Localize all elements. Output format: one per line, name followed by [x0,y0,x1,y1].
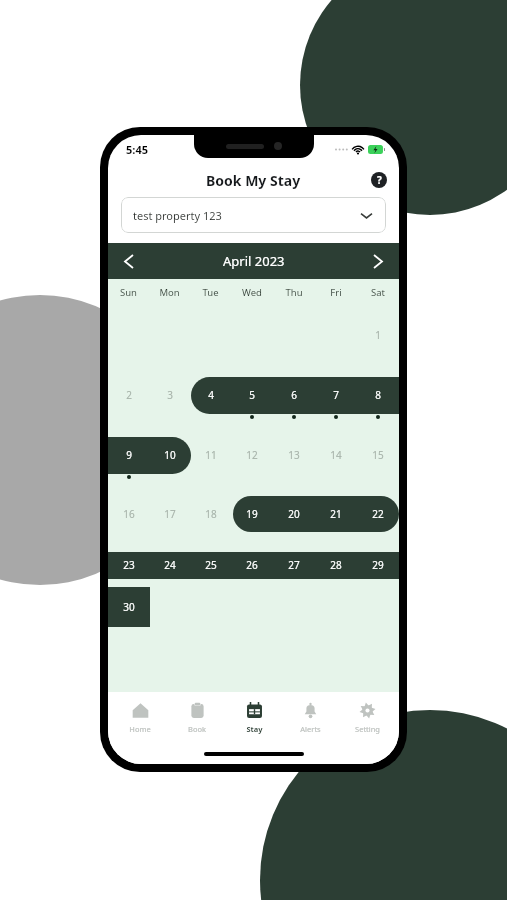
button[interactable]: 3 [149,365,190,425]
staticText: Thu [285,286,303,299]
staticText: 2 [126,388,132,402]
staticText: April 2023 [223,252,285,270]
staticText: Sat [371,286,385,299]
button[interactable]: 24 [149,543,190,587]
staticText: 1 [375,328,381,342]
staticText: 17 [164,507,176,521]
button[interactable]: 5 [231,365,273,425]
staticText: Alerts [300,724,321,734]
button[interactable]: 1 [357,305,399,365]
staticText: 20 [288,507,300,521]
button[interactable]: 12 [231,425,273,485]
button[interactable]: Setting [342,702,392,734]
button[interactable]: 27 [273,543,315,587]
staticText: 28 [330,558,342,572]
staticText: 27 [288,558,300,572]
staticText: Wed [242,286,262,299]
staticText: Fri [330,286,342,299]
staticText: 13 [288,448,300,462]
staticText: 12 [246,448,258,462]
staticText: ? [377,173,382,187]
staticText: 19 [246,507,258,521]
staticText: 4 [208,388,214,402]
staticText: 15 [372,448,384,462]
button[interactable]: Previous month [116,248,142,274]
button[interactable]: 18 [190,485,231,543]
button[interactable]: 14 [315,425,357,485]
button[interactable]: Alerts [285,702,335,734]
button[interactable]: Next month [365,248,391,274]
button[interactable]: 11 [190,425,231,485]
button[interactable]: 13 [273,425,315,485]
staticText: 8 [375,388,381,402]
staticText: 14 [330,448,342,462]
staticText: Home [129,724,151,734]
button[interactable]: 26 [231,543,273,587]
staticText: Mon [159,286,180,299]
button[interactable]: 4 [190,365,231,425]
button[interactable]: Book [172,702,222,734]
staticText: 9 [126,448,132,462]
button[interactable]: Help [371,172,387,188]
button[interactable]: 6 [273,365,315,425]
staticText: 18 [205,507,217,521]
staticText: Book [188,724,206,734]
button[interactable]: 28 [315,543,357,587]
staticText: Tue [202,286,219,299]
button[interactable]: 17 [149,485,190,543]
button[interactable]: 2 [108,365,149,425]
staticText: 29 [372,558,384,572]
staticText: Book My Stay [206,171,301,190]
button[interactable]: 23 [108,543,149,587]
staticText: 26 [246,558,258,572]
staticText: 5:45 [126,142,148,157]
button[interactable]: 21 [315,485,357,543]
button [149,587,190,627]
staticText: 6 [291,388,297,402]
staticText: 21 [330,507,342,521]
button[interactable]: 25 [190,543,231,587]
button[interactable]: Stay [229,702,279,734]
staticText: 30 [123,600,135,614]
staticText: 16 [123,507,135,521]
staticText: 7 [333,388,339,402]
button[interactable]: 22 [357,485,399,543]
staticText: 23 [123,558,135,572]
staticText: Sun [120,286,137,299]
button[interactable]: 30 [108,587,149,627]
staticText: 5 [249,388,255,402]
button[interactable]: 19 [231,485,273,543]
button[interactable]: 16 [108,485,149,543]
staticText: 24 [164,558,176,572]
button[interactable]: 29 [357,543,399,587]
staticText: Stay [246,724,263,734]
button[interactable]: 9 [108,425,149,485]
staticText: 10 [164,448,176,462]
button[interactable]: Home [115,702,165,734]
staticText: Setting [355,724,380,734]
staticText: test property 123 [133,208,222,223]
staticText: 22 [372,507,384,521]
button[interactable]: 20 [273,485,315,543]
staticText: 3 [167,388,173,402]
staticText: 11 [205,448,217,462]
staticText: 25 [205,558,217,572]
button[interactable]: 8 [357,365,399,425]
button[interactable]: 10 [149,425,190,485]
button[interactable]: 7 [315,365,357,425]
button[interactable]: test property 123 [121,197,386,233]
button[interactable]: 15 [357,425,399,485]
